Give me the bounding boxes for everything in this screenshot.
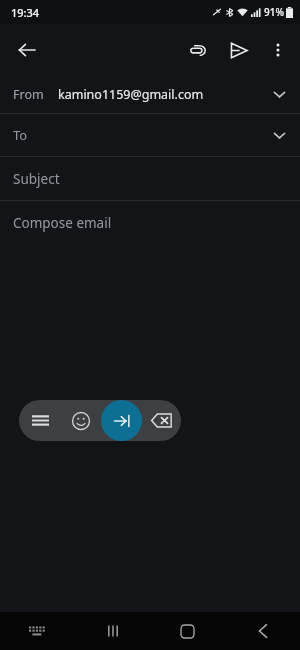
button[interactable]: Home [150,612,225,650]
staticText: To [13,126,28,144]
button[interactable]: Subject [0,157,300,200]
staticText: From [13,86,44,103]
button[interactable]: Back [225,612,300,650]
button[interactable]: Compose email [0,201,300,245]
staticText: Compose email [13,214,112,232]
button[interactable]: Attach file [178,30,218,70]
button[interactable]: From [0,76,300,113]
staticText: 19:34 [11,5,40,20]
button[interactable]: To [0,114,300,156]
staticText: kamino1159@gmail.com [58,86,204,103]
staticText: 91% [264,5,284,19]
button[interactable]: Recent apps [75,612,150,650]
button[interactable]: More options [258,30,298,70]
button[interactable]: Hide keyboard [0,612,75,650]
button[interactable]: Back [6,29,48,71]
button[interactable]: Backspace [142,400,181,441]
button[interactable]: Emoji [61,400,101,441]
button[interactable]: Tab [101,400,142,441]
staticText: Subject [13,170,60,188]
button[interactable]: Send [218,30,258,70]
button[interactable]: Keyboard settings [19,400,61,441]
